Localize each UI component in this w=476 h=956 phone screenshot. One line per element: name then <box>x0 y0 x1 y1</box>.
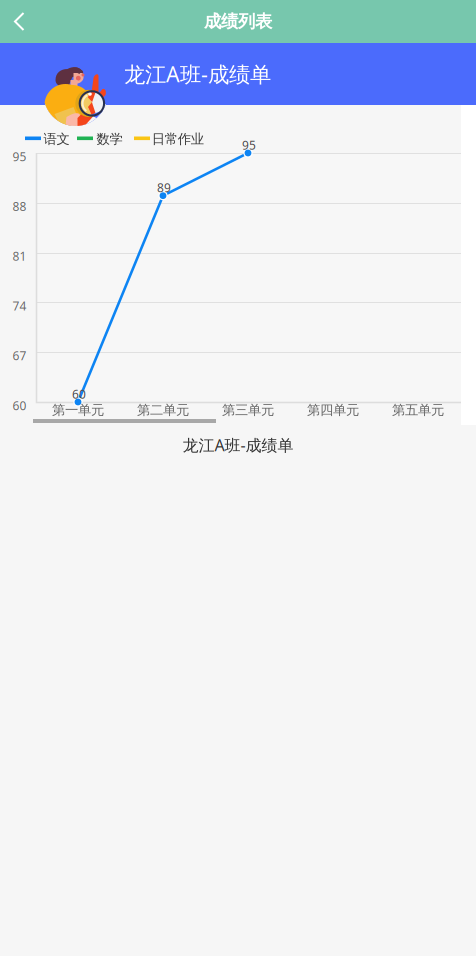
staticText: 数学 <box>96 131 122 147</box>
staticText: 95 <box>242 137 256 153</box>
staticText: 67 <box>12 348 26 364</box>
staticText: 第三单元 <box>222 402 274 418</box>
staticText: 60 <box>12 397 26 413</box>
staticText: 第二单元 <box>137 402 189 418</box>
staticText: 95 <box>12 148 26 164</box>
button[interactable]: Back <box>0 0 46 43</box>
staticText: 89 <box>157 180 171 196</box>
staticText: 81 <box>12 248 26 264</box>
staticText: 龙江A班-成绩单 <box>182 434 293 456</box>
staticText: 第五单元 <box>392 402 444 418</box>
staticText: 语文 <box>43 131 69 147</box>
staticText: 成绩列表 <box>204 11 272 32</box>
staticText: 日常作业 <box>152 131 204 147</box>
staticText: 第一单元 <box>52 402 104 418</box>
staticText: 龙江A班-成绩单 <box>124 60 271 88</box>
staticText: 60 <box>72 386 86 402</box>
staticText: 88 <box>12 198 26 214</box>
staticText: 第四单元 <box>307 402 359 418</box>
staticText: 74 <box>12 298 26 314</box>
